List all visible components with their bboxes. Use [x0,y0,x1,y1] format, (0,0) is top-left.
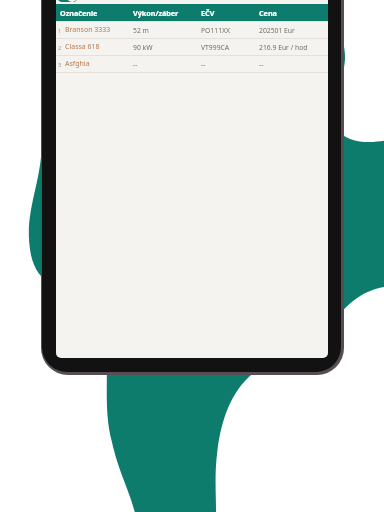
staticText: Asfghia [65,59,90,69]
staticText: 202501 Eur [259,26,328,35]
staticText: 90 kW [133,43,201,52]
staticText: 2 [58,44,62,51]
button[interactable]: 3 [56,55,328,72]
staticText: -- [201,60,259,69]
staticText: Branson 3333 [65,25,111,35]
staticText: -- [133,60,201,69]
staticText: VT999CA [201,43,259,52]
staticText: Výkon/záber [133,8,201,18]
staticText: -- [259,60,328,69]
button[interactable]: Aktívne [56,0,78,2]
staticText: Cena [259,8,328,18]
staticText: 216.9 Eur / hod [259,43,328,52]
staticText: EČV [201,8,259,18]
staticText: 52 m [133,26,201,35]
button[interactable]: 2 [56,38,328,55]
staticText: 1 [58,27,62,34]
staticText: Classa 618 [65,42,100,52]
staticText: PO111XX [201,26,259,35]
staticText: Označenie [60,8,133,18]
button[interactable]: 1 [56,21,328,38]
staticText: 3 [58,61,62,68]
